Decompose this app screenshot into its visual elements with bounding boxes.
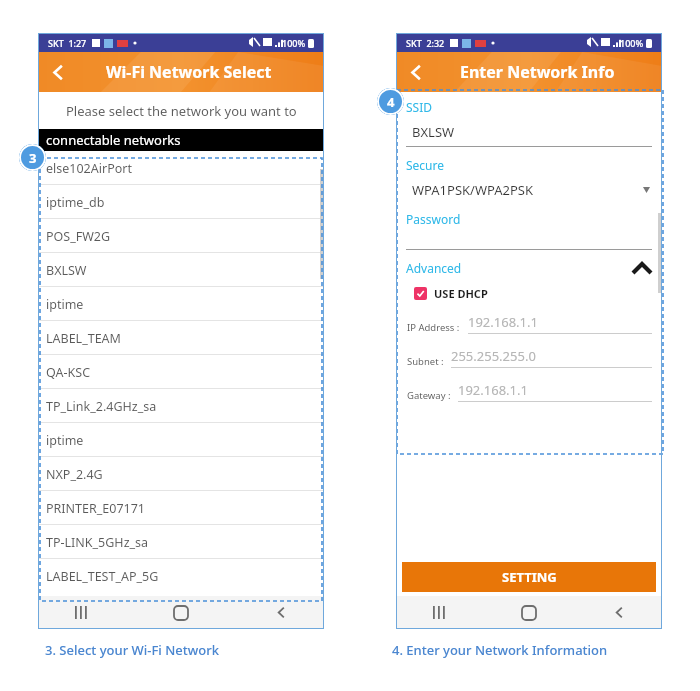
button[interactable]: LABEL_TEST_AP_5G	[38, 559, 324, 593]
button[interactable]: Recents	[422, 596, 456, 629]
staticText: Secure	[406, 157, 445, 173]
staticText: Gateway :	[407, 389, 458, 402]
button[interactable]: iptime_db	[38, 185, 324, 219]
button[interactable]: SETTING	[402, 562, 656, 592]
staticText: iptime_db	[46, 194, 105, 211]
staticText: BXLSW	[412, 123, 455, 141]
button[interactable]: POS_FW2G	[38, 219, 324, 253]
staticText: 255.255.255.0	[451, 347, 536, 365]
button[interactable]: Back	[264, 596, 298, 629]
staticText: SSID	[406, 99, 433, 115]
staticText: 4. Enter your Network Information	[392, 641, 608, 659]
staticText: Password	[406, 211, 461, 227]
staticText: QA-KSC	[46, 364, 91, 381]
button[interactable]: TP-LINK_5GHz_sa	[38, 525, 324, 559]
button[interactable]: Back	[396, 52, 436, 92]
staticText: USE DHCP	[434, 286, 488, 301]
staticText: 100%	[282, 37, 306, 49]
staticText: SKT 1:27	[48, 37, 87, 49]
button[interactable]: Home	[164, 596, 198, 629]
button[interactable]: Home	[512, 596, 546, 629]
staticText: else102AirPort	[46, 160, 132, 177]
button[interactable]: NXP_2.4G	[38, 457, 324, 491]
button[interactable]: else102AirPort	[38, 151, 324, 185]
button[interactable]: TP_Link_2.4GHz_sa	[38, 389, 324, 423]
button[interactable]: Recents	[64, 596, 98, 629]
button[interactable]: iptime	[38, 287, 324, 321]
button[interactable]: Back	[38, 52, 78, 92]
staticText: POS_FW2G	[46, 228, 111, 245]
staticText: 192.168.1.1	[468, 313, 538, 331]
staticText: TP_Link_2.4GHz_sa	[46, 398, 157, 415]
staticText: Advanced	[406, 260, 462, 276]
button[interactable]: WPA1PSK/WPA2PSK	[406, 181, 652, 199]
staticText: Enter Network Info	[460, 61, 615, 83]
staticText: 100%	[620, 37, 644, 49]
staticText: LABEL_TEAM	[46, 330, 121, 347]
button[interactable]: QA-KSC	[38, 355, 324, 389]
button[interactable]: BXLSW	[38, 253, 324, 287]
staticText: 192.168.1.1	[458, 381, 528, 399]
button[interactable]: iptime	[38, 423, 324, 457]
staticText: 4	[387, 93, 395, 111]
button[interactable]: USE DHCP	[406, 286, 488, 301]
button[interactable]: PRINTER_E07171	[38, 491, 324, 525]
staticText: LABEL_TEST_AP_5G	[46, 568, 159, 585]
staticText: iptime	[46, 432, 84, 449]
staticText: connectable networks	[46, 131, 181, 149]
staticText: Please select the network you want to	[66, 102, 297, 120]
staticText: SETTING	[502, 568, 557, 586]
staticText: 3	[29, 149, 37, 167]
staticText: NXP_2.4G	[46, 466, 103, 483]
staticText: 3. Select your Wi-Fi Network	[45, 641, 219, 659]
staticText: PRINTER_E07171	[46, 500, 146, 517]
staticText: Wi-Fi Network Select	[106, 61, 272, 83]
button[interactable]: Advanced	[406, 260, 652, 276]
staticText: WPA1PSK/WPA2PSK	[412, 181, 534, 199]
staticText: TP-LINK_5GHz_sa	[46, 534, 149, 551]
button[interactable]: Back	[602, 596, 636, 629]
staticText: iptime	[46, 296, 84, 313]
staticText: BXLSW	[46, 262, 87, 279]
staticText: Subnet :	[407, 355, 451, 368]
staticText: SKT 2:32	[406, 37, 445, 49]
button[interactable]: LABEL_TEAM	[38, 321, 324, 355]
staticText: IP Address :	[407, 321, 468, 334]
